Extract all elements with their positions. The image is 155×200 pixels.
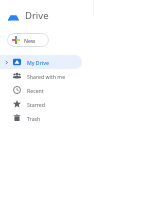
button[interactable]: Trash: [0, 111, 82, 125]
button[interactable]: Drive: [0, 0, 70, 30]
button[interactable]: Starred: [0, 97, 82, 111]
staticText: Recent: [27, 87, 44, 94]
staticText: My Drive: [27, 59, 49, 66]
button[interactable]: Shared with me: [0, 69, 82, 83]
staticText: Trash: [27, 115, 41, 122]
staticText: Shared with me: [27, 73, 66, 80]
button[interactable]: Recent: [0, 83, 82, 97]
button[interactable]: New: [7, 33, 49, 47]
staticText: Drive: [25, 9, 49, 22]
button[interactable]: My Drive: [0, 55, 82, 69]
staticText: New: [24, 37, 36, 44]
staticText: Starred: [27, 101, 45, 108]
